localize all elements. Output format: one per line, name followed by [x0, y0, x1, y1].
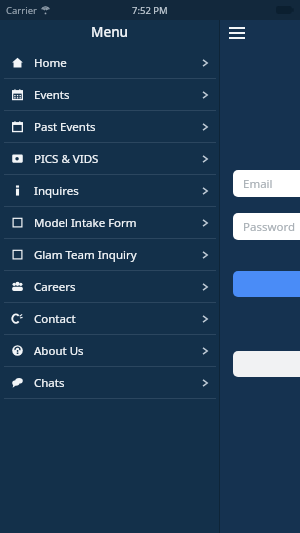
staticText: Careers	[34, 279, 200, 295]
staticText: Carrier	[6, 4, 37, 17]
staticText: 7:52 PM	[132, 4, 168, 17]
staticText: About Us	[34, 343, 200, 359]
button[interactable]: Sign in	[233, 271, 300, 297]
staticText: Events	[34, 87, 200, 103]
button[interactable]: Password	[233, 213, 300, 240]
button[interactable]: Careers	[0, 271, 220, 302]
staticText: Glam Team Inquiry	[34, 247, 200, 263]
staticText: Email	[243, 176, 273, 192]
button[interactable]: Glam Team Inquiry	[0, 239, 220, 270]
button[interactable]: Model Intake Form	[0, 207, 220, 238]
staticText: PICS & VIDS	[34, 151, 200, 167]
button[interactable]: PICS & VIDS	[0, 143, 220, 174]
button[interactable]: Email	[233, 170, 300, 197]
staticText: Menu	[91, 23, 129, 41]
staticText: Home	[34, 55, 200, 71]
staticText: Inquires	[34, 183, 200, 199]
staticText: Chats	[34, 375, 200, 391]
staticText: Past Events	[34, 119, 200, 135]
button[interactable]: Contact	[0, 303, 220, 334]
button[interactable]: Open menu	[222, 20, 252, 46]
staticText: Model Intake Form	[34, 215, 200, 231]
staticText: Password	[243, 219, 296, 235]
button[interactable]: Inquires	[0, 175, 220, 206]
button[interactable]: Chats	[0, 367, 220, 398]
button[interactable]: About Us	[0, 335, 220, 366]
button[interactable]: Past Events	[0, 111, 220, 142]
button[interactable]: Events	[0, 79, 220, 110]
button[interactable]: Sign up	[233, 351, 300, 377]
staticText: Contact	[34, 311, 200, 327]
button[interactable]: Home	[0, 47, 220, 78]
